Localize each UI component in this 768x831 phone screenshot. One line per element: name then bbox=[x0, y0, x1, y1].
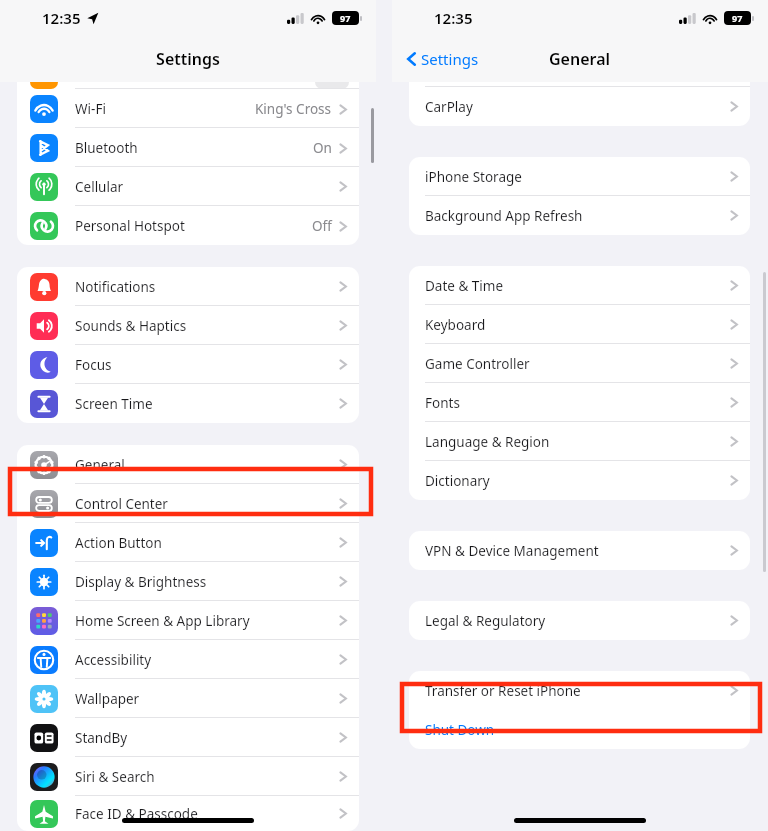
button[interactable]: General bbox=[17, 445, 359, 484]
staticText: 97 bbox=[732, 12, 743, 24]
button[interactable]: Sounds & Haptics bbox=[17, 306, 359, 345]
staticText: CarPlay bbox=[425, 98, 473, 116]
staticText: StandBy bbox=[75, 729, 128, 747]
button[interactable]: Wallpaper bbox=[17, 679, 359, 718]
staticText: Display & Brightness bbox=[75, 573, 207, 591]
staticText: On bbox=[313, 139, 332, 157]
staticText: Date & Time bbox=[425, 277, 504, 295]
button[interactable]: iPhone Storage bbox=[409, 157, 750, 196]
staticText: Settings bbox=[421, 49, 479, 69]
button[interactable]: Wi-Fi bbox=[17, 89, 359, 128]
staticText: Game Controller bbox=[425, 355, 530, 373]
staticText: Transfer or Reset iPhone bbox=[425, 682, 581, 700]
button[interactable]: Fonts bbox=[409, 383, 750, 422]
staticText: Dictionary bbox=[425, 472, 490, 490]
button[interactable]: Cellular bbox=[17, 167, 359, 206]
staticText: Action Button bbox=[75, 534, 162, 552]
staticText: Fonts bbox=[425, 394, 460, 412]
staticText: VPN & Device Management bbox=[425, 542, 599, 560]
staticText: 12:35 bbox=[434, 8, 473, 28]
button[interactable]: Control Center bbox=[17, 484, 359, 523]
staticText: Notifications bbox=[75, 278, 156, 296]
staticText: King's Cross bbox=[255, 100, 332, 118]
staticText: 12:35 bbox=[42, 8, 81, 28]
button[interactable]: Display & Brightness bbox=[17, 562, 359, 601]
staticText: Bluetooth bbox=[75, 139, 138, 157]
button[interactable]: Accessibility bbox=[17, 640, 359, 679]
button[interactable]: Home Screen & App Library bbox=[17, 601, 359, 640]
staticText: Shut Down bbox=[425, 721, 495, 739]
button[interactable]: Personal Hotspot bbox=[17, 206, 359, 245]
staticText: Accessibility bbox=[75, 651, 152, 669]
staticText: General bbox=[75, 456, 125, 474]
button[interactable]: Face ID & Passcode bbox=[17, 796, 359, 831]
button[interactable]: VPN & Device Management bbox=[409, 531, 750, 570]
staticText: Legal & Regulatory bbox=[425, 612, 546, 630]
staticText: Language & Region bbox=[425, 433, 550, 451]
button[interactable]: Settings bbox=[404, 45, 481, 73]
button[interactable]: Notifications bbox=[17, 267, 359, 306]
button[interactable]: Bluetooth bbox=[17, 128, 359, 167]
button[interactable]: Game Controller bbox=[409, 344, 750, 383]
staticText: Face ID & Passcode bbox=[75, 805, 198, 823]
button[interactable]: Focus bbox=[17, 345, 359, 384]
staticText: Screen Time bbox=[75, 395, 153, 413]
staticText: Focus bbox=[75, 356, 112, 374]
button[interactable]: Action Button bbox=[17, 523, 359, 562]
button[interactable]: Dictionary bbox=[409, 461, 750, 500]
button[interactable]: Background App Refresh bbox=[409, 196, 750, 235]
staticText: Sounds & Haptics bbox=[75, 317, 187, 335]
staticText: Personal Hotspot bbox=[75, 217, 185, 235]
staticText: General bbox=[549, 48, 611, 70]
staticText: Siri & Search bbox=[75, 768, 155, 786]
button[interactable]: Siri & Search bbox=[17, 757, 359, 796]
staticText: Cellular bbox=[75, 178, 124, 196]
staticText: Settings bbox=[156, 48, 220, 70]
staticText: Control Center bbox=[75, 495, 168, 513]
staticText: Home Screen & App Library bbox=[75, 612, 250, 630]
button[interactable]: Screen Time bbox=[17, 384, 359, 423]
staticText: Wallpaper bbox=[75, 690, 140, 708]
staticText: Background App Refresh bbox=[425, 207, 583, 225]
staticText: Off bbox=[312, 217, 332, 235]
button[interactable]: Date & Time bbox=[409, 266, 750, 305]
button[interactable]: Legal & Regulatory bbox=[409, 601, 750, 640]
button[interactable]: CarPlay bbox=[409, 87, 750, 126]
staticText: iPhone Storage bbox=[425, 168, 522, 186]
staticText: Wi-Fi bbox=[75, 100, 106, 118]
button[interactable]: Language & Region bbox=[409, 422, 750, 461]
button[interactable]: StandBy bbox=[17, 718, 359, 757]
button[interactable]: Transfer or Reset iPhone bbox=[409, 671, 750, 710]
button[interactable]: Keyboard bbox=[409, 305, 750, 344]
staticText: Keyboard bbox=[425, 316, 486, 334]
button[interactable]: Shut Down bbox=[409, 710, 750, 749]
staticText: 97 bbox=[340, 12, 351, 24]
